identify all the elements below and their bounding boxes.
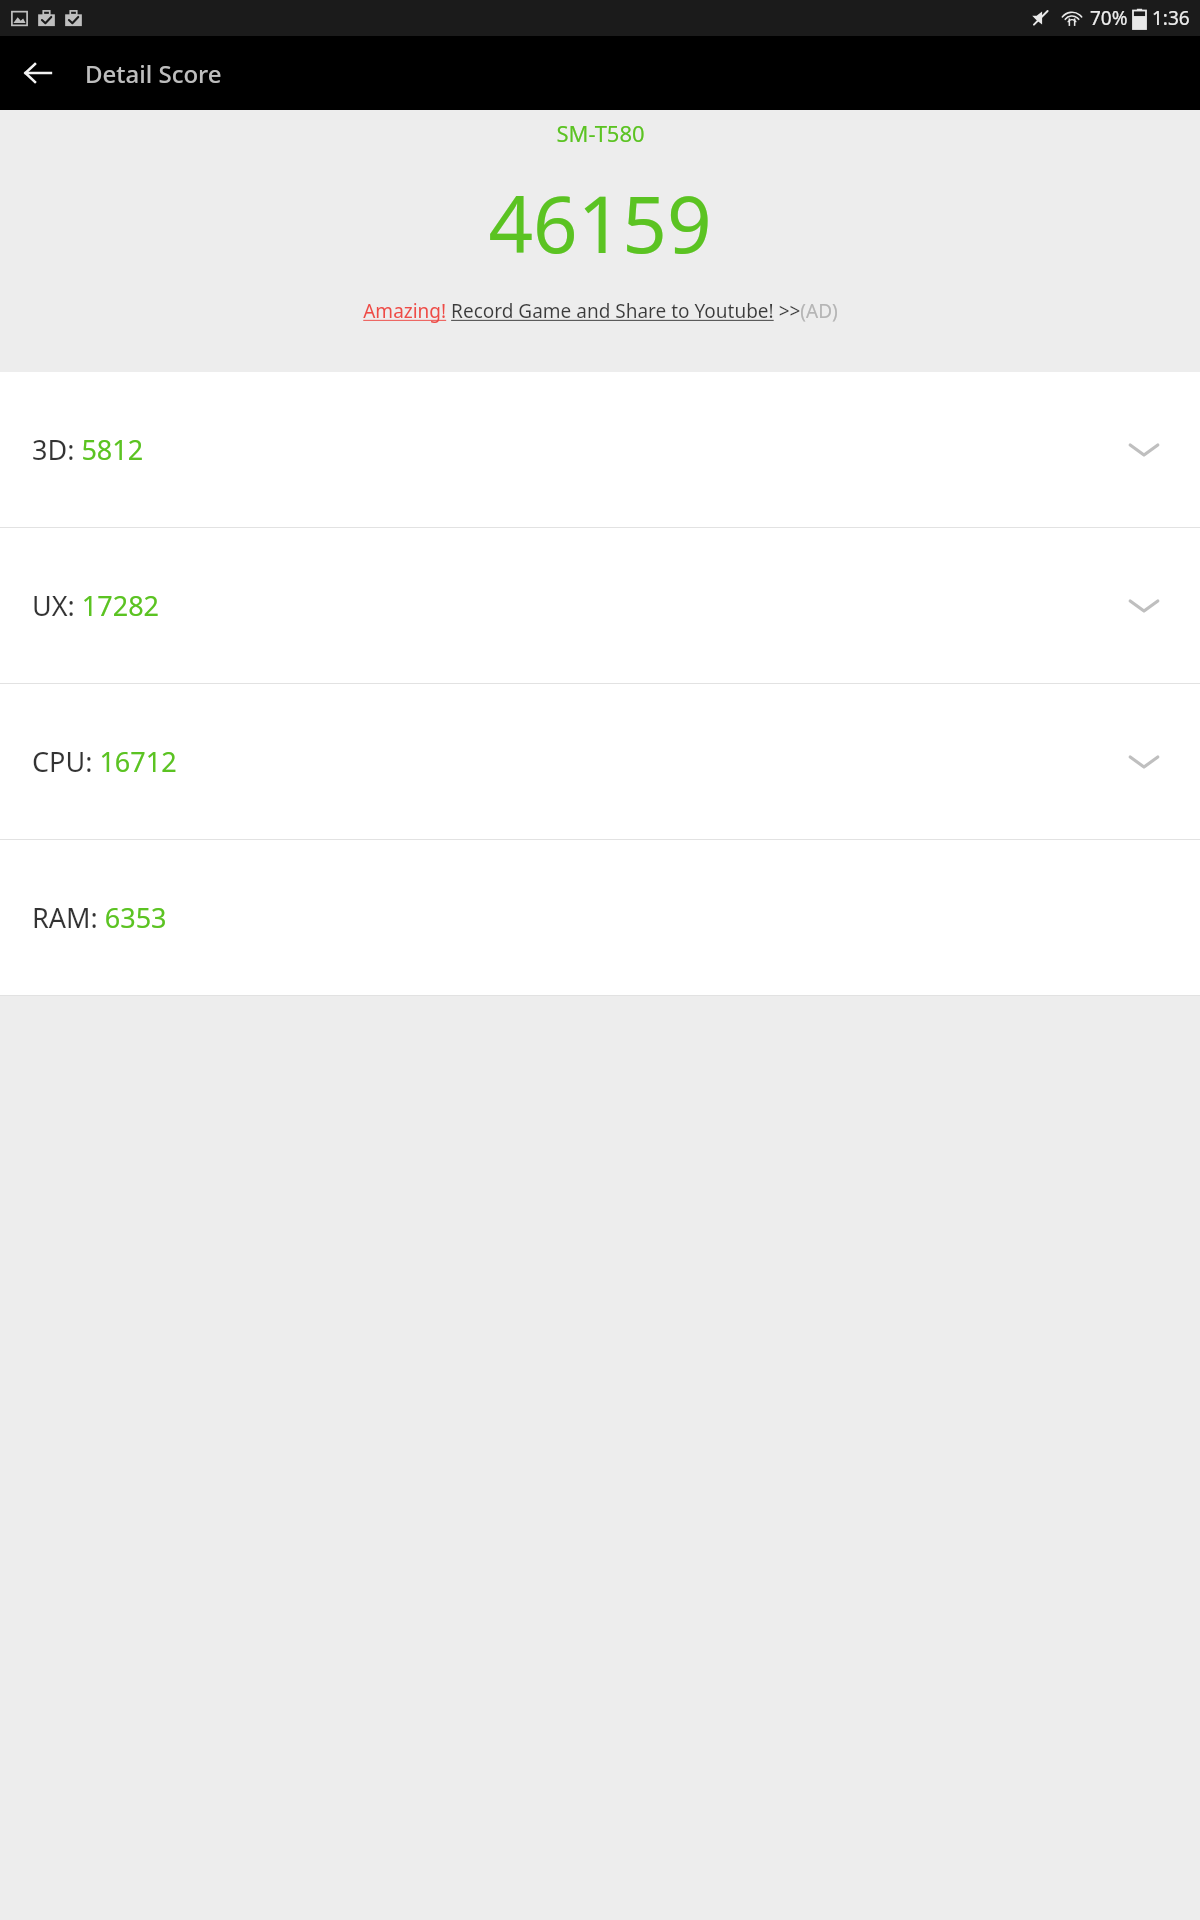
staticText: RAM: 6353: [32, 899, 167, 936]
staticText: UX: 17282: [32, 587, 160, 624]
button[interactable]: CPU: 16712: [0, 684, 1200, 839]
staticText: 46159: [488, 170, 712, 276]
button[interactable]: RAM: 6353: [0, 840, 1200, 995]
staticText: Detail Score: [85, 57, 222, 90]
button[interactable]: UX: 17282: [0, 528, 1200, 683]
button[interactable]: Amazing! Record Game and Share to Youtub…: [357, 296, 844, 326]
button[interactable]: Back: [12, 47, 64, 99]
staticText: 3D: 5812: [32, 431, 144, 468]
staticText: 70%: [1090, 5, 1128, 31]
staticText: CPU: 16712: [32, 743, 177, 780]
staticText: SM-T580: [556, 118, 645, 148]
staticText: 1:36: [1152, 5, 1190, 31]
staticText: Amazing! Record Game and Share to Youtub…: [363, 298, 838, 324]
button[interactable]: 3D: 5812: [0, 372, 1200, 527]
